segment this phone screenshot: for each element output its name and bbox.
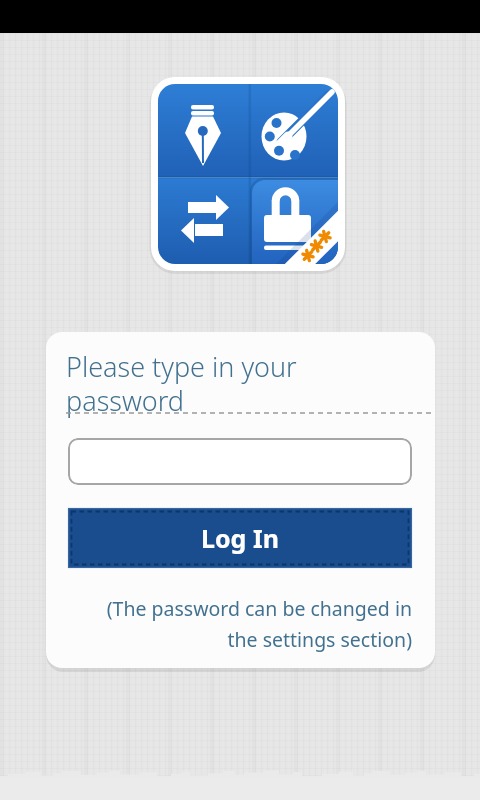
staticText: Log In	[201, 521, 279, 555]
staticText: (The password can be changed in the sett…	[66, 595, 412, 653]
button[interactable]	[68, 438, 412, 485]
button[interactable]: Log In	[68, 508, 412, 568]
staticText: Please type in your password	[66, 348, 297, 419]
